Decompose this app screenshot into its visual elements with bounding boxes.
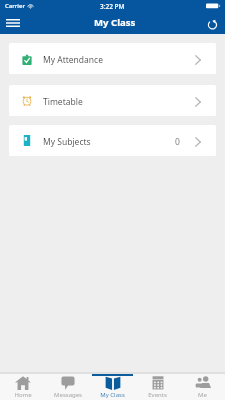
staticText: 3:22 PM (100, 2, 125, 11)
staticText: My Class (94, 16, 136, 29)
staticText: Timetable (43, 96, 83, 108)
staticText: Home (14, 391, 32, 399)
staticText: Messages (54, 391, 82, 399)
staticText: Me (198, 391, 207, 399)
button[interactable]: Refresh (199, 12, 225, 34)
button[interactable]: Events (135, 374, 180, 400)
button[interactable]: Me (180, 374, 225, 400)
button[interactable]: My Attendance (9, 43, 216, 74)
button[interactable]: Home (0, 374, 45, 400)
button[interactable]: My Subjects (9, 125, 216, 156)
staticText: My Subjects (43, 136, 91, 148)
staticText: My Class (100, 391, 125, 399)
button[interactable]: My Class (90, 374, 135, 400)
staticText: My Attendance (43, 54, 103, 66)
button[interactable]: Timetable (9, 85, 216, 116)
button[interactable]: Menu (0, 12, 26, 34)
staticText: Carrier (5, 2, 25, 10)
staticText: 0 (175, 136, 180, 148)
button[interactable]: Messages (45, 374, 90, 400)
staticText: Events (148, 391, 167, 399)
